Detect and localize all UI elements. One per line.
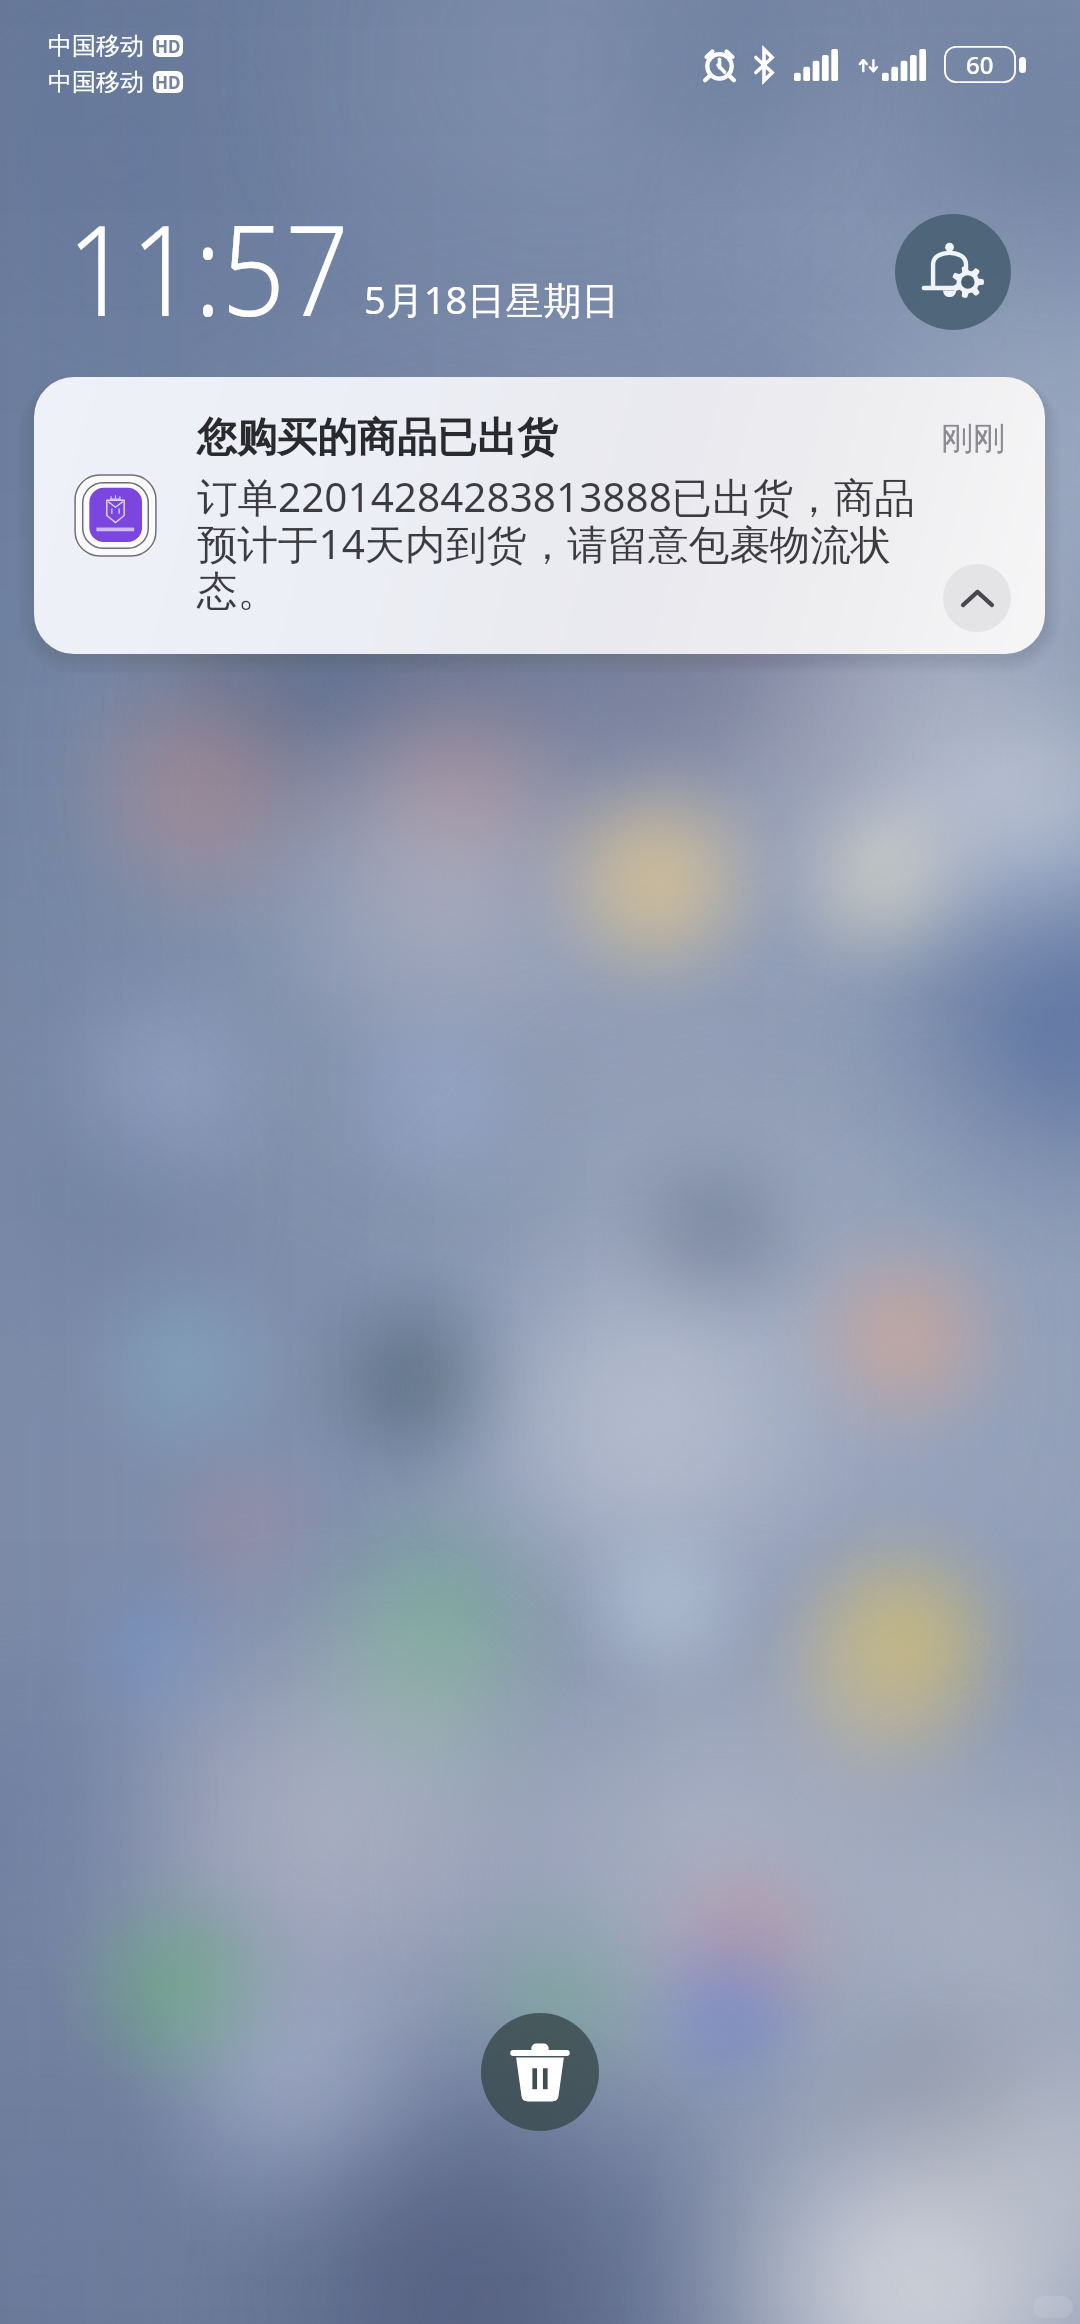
staticText: 您购买的商品已出货 xyxy=(197,412,557,462)
staticText: 11:57 xyxy=(67,181,349,353)
button[interactable]: 您购买的商品已出货 xyxy=(34,377,1045,654)
staticText: 订单22014284283813888已出货，商品 预计于14天内到货，请留意包… xyxy=(197,469,915,617)
button[interactable]: Clear all notifications xyxy=(481,2013,599,2131)
staticText: 60 xyxy=(966,48,994,81)
staticText: 中国移动 xyxy=(48,31,144,61)
staticText: 刚刚 xyxy=(941,418,1005,458)
staticText: 中国移动 xyxy=(48,67,144,97)
staticText: HD xyxy=(155,35,181,57)
staticText: HD xyxy=(155,71,181,93)
staticText: 5月18日星期日 xyxy=(364,273,620,325)
button[interactable]: Expand notification xyxy=(943,564,1011,632)
button[interactable]: Notification settings xyxy=(895,214,1011,330)
